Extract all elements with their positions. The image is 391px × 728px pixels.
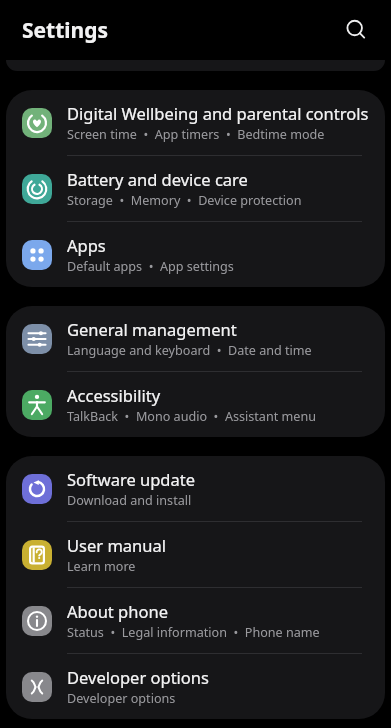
staticText: Language and keyboard • Date and time [67,342,312,359]
button[interactable]: General management [6,306,385,371]
staticText: TalkBack • Mono audio • Assistant menu [67,408,316,425]
button[interactable]: Software update [6,456,385,521]
staticText: General management [67,318,237,340]
staticText: Software update [67,468,195,490]
button[interactable]: Apps [6,222,385,287]
button[interactable]: Accessibility [6,372,385,437]
staticText: Accessibility [67,384,161,406]
button[interactable]: User manual [6,522,385,587]
staticText: Developer options [67,690,176,707]
staticText: About phone [67,600,168,622]
staticText: Battery and device care [67,168,248,190]
button[interactable]: Digital Wellbeing and parental controls [6,90,385,155]
staticText: Status • Legal information • Phone name [67,624,320,641]
staticText: Learn more [67,558,136,575]
staticText: Apps [67,234,106,256]
staticText: Download and install [67,492,192,509]
button[interactable]: Battery and device care [6,156,385,221]
staticText: Settings [22,16,109,45]
staticText: Storage • Memory • Device protection [67,192,302,209]
staticText: User manual [67,534,166,556]
staticText: Screen time • App timers • Bedtime mode [67,126,325,143]
staticText: Developer options [67,666,209,688]
staticText: Digital Wellbeing and parental controls [67,102,369,124]
button[interactable]: About phone [6,588,385,653]
staticText: Default apps • App settings [67,258,234,275]
button[interactable]: Search settings [339,13,373,47]
button[interactable]: Developer options [6,654,385,719]
